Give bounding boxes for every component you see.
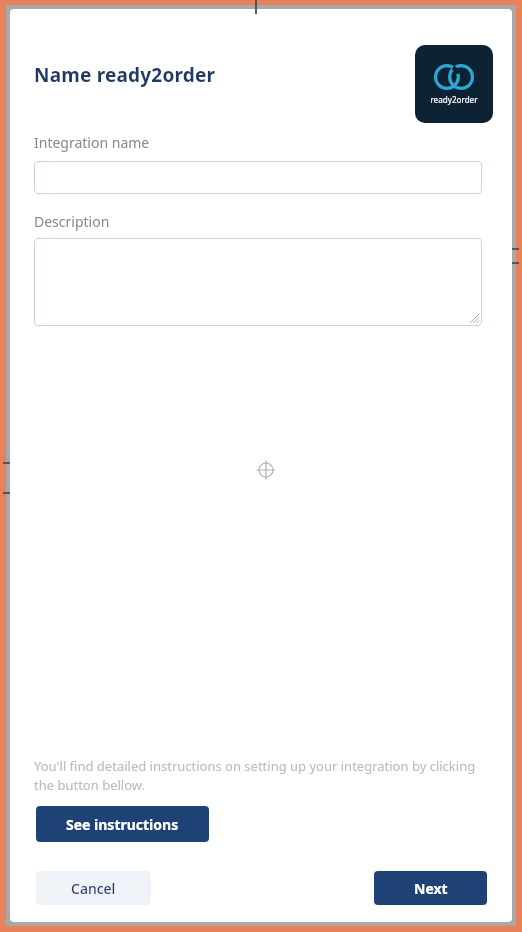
button[interactable]: See instructions	[36, 806, 209, 842]
staticText: Next	[414, 879, 448, 898]
staticText: Integration name	[34, 133, 150, 152]
button[interactable]: Next	[374, 871, 487, 905]
button[interactable]	[34, 161, 482, 194]
button[interactable]	[34, 238, 482, 326]
other: ready2order logo	[415, 45, 493, 123]
staticText: Cancel	[71, 879, 116, 898]
staticText: ready2order	[430, 94, 478, 105]
staticText: Description	[34, 212, 110, 231]
staticText: You'll find detailed instructions on set…	[34, 757, 476, 794]
staticText: See instructions	[66, 815, 179, 834]
button[interactable]: Cancel	[36, 871, 151, 905]
staticText: Name ready2order	[34, 62, 216, 88]
